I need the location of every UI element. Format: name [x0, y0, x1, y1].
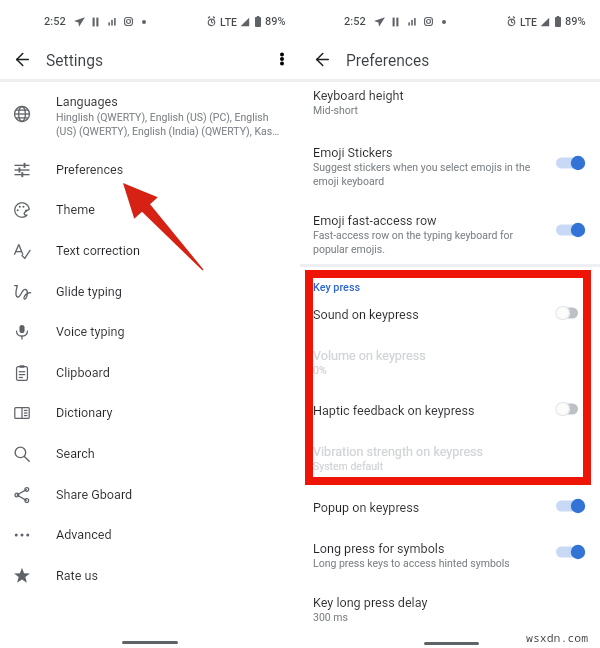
staticText: Rate us — [56, 568, 98, 583]
staticText: Sound on keypress — [313, 307, 419, 322]
button[interactable]: Volume on keypress — [300, 342, 600, 376]
staticText: 300 ms — [313, 611, 348, 623]
button[interactable]: Text correction — [0, 230, 300, 271]
staticText: Hinglish (QWERTY), English (US) (PC), En… — [56, 111, 280, 137]
button[interactable]: Key long press delay — [300, 589, 600, 623]
button[interactable]: Long press for symbols — [300, 535, 600, 569]
button[interactable]: Sound on keypress — [551, 302, 591, 324]
staticText: Theme — [56, 202, 95, 217]
staticText: Vibration strength on keypress — [313, 444, 484, 459]
staticText: Preferences — [346, 52, 430, 70]
staticText: Haptic feedback on keypress — [313, 403, 475, 418]
staticText: Emoji Stickers — [313, 145, 393, 160]
button[interactable]: Vibration strength on keypress — [300, 438, 600, 472]
staticText: Advanced — [56, 527, 112, 542]
button[interactable]: Popup on keypress — [551, 495, 591, 517]
staticText: 2:52 — [344, 15, 366, 28]
staticText: 0% — [313, 364, 327, 376]
button[interactable]: Popup on keypress — [300, 494, 600, 520]
staticText: LTE — [220, 16, 237, 28]
staticText: Voice typing — [56, 324, 125, 339]
staticText: System default — [313, 460, 384, 472]
button[interactable]: Voice typing — [0, 311, 300, 352]
staticText: Dictionary — [56, 405, 113, 420]
button[interactable]: Preferences — [0, 149, 300, 190]
button[interactable]: Advanced — [0, 514, 300, 555]
staticText: Glide typing — [56, 284, 122, 299]
button[interactable]: Clipboard — [0, 352, 300, 393]
staticText: Search — [56, 446, 95, 461]
staticText: Clipboard — [56, 365, 110, 380]
staticText: Mid-short — [313, 104, 358, 116]
staticText: Settings — [46, 52, 103, 70]
staticText: Emoji fast-access row — [313, 213, 437, 228]
button[interactable]: Rate us — [0, 555, 300, 596]
staticText: 89% — [565, 15, 586, 28]
staticText: Text correction — [56, 243, 140, 258]
staticText: Languages — [56, 94, 118, 109]
staticText: Long press for symbols — [313, 541, 445, 556]
staticText: Key long press delay — [313, 595, 428, 610]
button[interactable]: Back — [310, 47, 334, 71]
button[interactable]: Share Gboard — [0, 474, 300, 515]
staticText: Suggest stickers when you select emojis … — [313, 161, 531, 187]
button[interactable]: Theme — [0, 189, 300, 230]
button[interactable]: Languages — [0, 92, 300, 136]
staticText: Share Gboard — [56, 487, 133, 502]
staticText: LTE — [520, 16, 537, 28]
staticText: Long press keys to access hinted symbols — [313, 557, 510, 569]
button[interactable]: Glide typing — [0, 271, 300, 312]
staticText: Keyboard height — [313, 88, 404, 103]
staticText: Preferences — [56, 162, 124, 177]
button[interactable]: Emoji fast-access row — [551, 219, 591, 241]
staticText: wsxdn.com — [526, 630, 589, 646]
staticText: Volume on keypress — [313, 348, 426, 363]
button[interactable]: Long press for symbols — [551, 541, 591, 563]
button[interactable]: Search — [0, 433, 300, 474]
staticText: Popup on keypress — [313, 500, 420, 515]
button[interactable]: Emoji Stickers — [551, 152, 591, 174]
button[interactable]: Sound on keypress — [300, 301, 600, 327]
staticText: Fast-access row on the typing keyboard f… — [313, 229, 514, 255]
staticText: 2:52 — [44, 15, 66, 28]
staticText: Key press — [313, 281, 361, 294]
button[interactable]: Emoji fast-access row — [300, 207, 600, 253]
button[interactable]: Haptic feedback on keypress — [551, 398, 591, 420]
button[interactable]: Haptic feedback on keypress — [300, 397, 600, 423]
button[interactable]: Dictionary — [0, 392, 300, 433]
button[interactable]: More options — [270, 47, 294, 71]
staticText: 89% — [265, 15, 286, 28]
button[interactable]: Emoji Stickers — [300, 139, 600, 185]
button[interactable]: Back — [10, 47, 34, 71]
button[interactable]: Keyboard height — [300, 82, 600, 116]
